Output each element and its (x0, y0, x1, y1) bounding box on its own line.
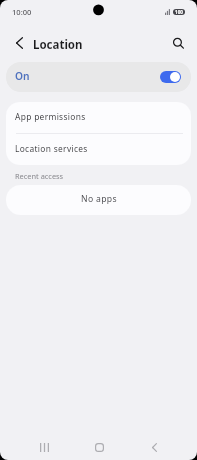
staticText: No apps (81, 193, 117, 205)
staticText: App permissions (15, 111, 86, 122)
staticText: 100 (175, 9, 183, 15)
button[interactable]: Search (164, 29, 192, 57)
button[interactable]: Home (85, 433, 114, 460)
button[interactable]: On (6, 62, 191, 92)
staticText: On (15, 69, 30, 83)
button[interactable]: App permissions (6, 102, 191, 133)
staticText: Location services (15, 143, 88, 154)
button[interactable]: Back (140, 433, 169, 460)
button[interactable]: No apps (6, 185, 191, 215)
staticText: 10:00 (12, 7, 32, 17)
button[interactable]: Back (7, 29, 31, 57)
button[interactable]: Recent apps (30, 433, 59, 460)
button[interactable]: Location services (6, 134, 191, 165)
staticText: Recent access (15, 171, 64, 181)
staticText: Location (33, 37, 83, 53)
